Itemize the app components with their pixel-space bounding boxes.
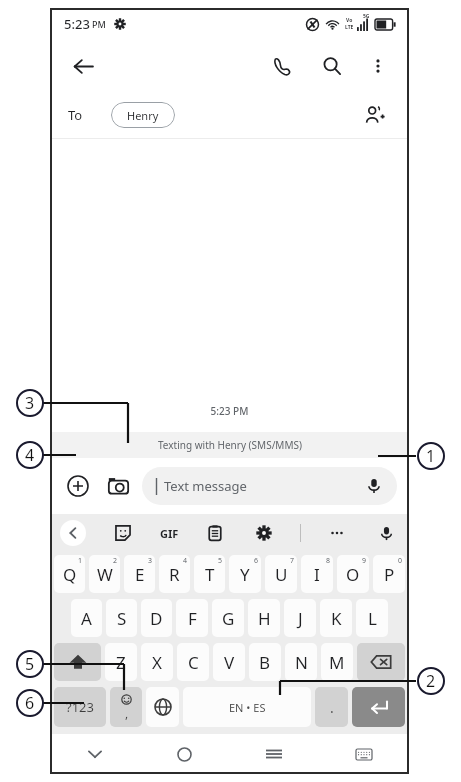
button[interactable]: GIF [160,520,179,546]
button[interactable]: Back [66,49,100,83]
button[interactable]: Clipboard [202,520,228,546]
button[interactable]: More [324,520,350,546]
button[interactable]: Home [139,734,229,774]
button[interactable]: Comma and emoji [110,687,142,727]
button[interactable]: Stickers [110,520,136,546]
button[interactable]: D [141,599,172,637]
staticText: 0 [398,556,403,566]
staticText: 3 [25,392,35,414]
staticText: 4 [183,556,188,566]
button[interactable]: Settings [251,520,277,546]
staticText: 2 [113,556,118,566]
staticText: 5 [218,556,223,566]
button[interactable]: A [71,599,102,637]
button[interactable]: Voice input [361,473,387,499]
button[interactable]: Search [315,49,349,83]
staticText: W [97,563,113,586]
staticText: O [346,563,360,586]
button[interactable]: L [356,599,388,637]
button[interactable]: Y [229,555,261,593]
button[interactable]: Recent apps [229,734,319,774]
staticText: L [368,607,377,630]
staticText: 8 [326,556,331,566]
staticText: PM [92,18,106,30]
button[interactable]: M [321,643,353,681]
button[interactable]: F [176,599,208,637]
staticText: U [275,563,288,586]
staticText: 6 [25,692,35,714]
button[interactable]: More options [363,51,393,81]
staticText: T [205,563,215,586]
staticText: Texting with Henry (SMS/MMS) [158,438,302,452]
staticText: X [152,651,162,674]
button[interactable]: Collapse toolbar [60,520,86,546]
staticText: 1 [78,556,83,566]
button[interactable]: Shift [54,643,101,681]
staticText: 2 [426,670,436,692]
staticText: LTE [345,24,354,31]
staticText: R [169,563,180,586]
staticText: H [258,607,271,630]
staticText: I [314,563,320,586]
button[interactable]: Add attachment [62,470,94,502]
staticText: Text message [164,477,247,495]
staticText: 4 [25,444,35,466]
staticText: B [259,651,271,674]
staticText: J [298,607,303,630]
button[interactable]: Camera [102,470,134,502]
button[interactable]: EN • ES [183,687,311,727]
staticText: M [329,651,345,674]
staticText: 9 [362,556,367,566]
button[interactable]: R [159,555,190,593]
staticText: Vo [346,17,353,24]
button[interactable]: N [285,643,317,681]
staticText: F [188,607,197,630]
button[interactable]: Z [105,643,137,681]
staticText: 7 [290,556,295,566]
button[interactable]: Add recipient [359,99,391,131]
button[interactable]: Text message [142,467,397,505]
button[interactable]: Q [54,555,85,593]
button[interactable]: Backspace [357,643,405,681]
staticText: S [117,607,127,630]
button[interactable]: W [89,555,120,593]
staticText: A [81,607,92,630]
staticText: P [384,563,395,586]
button[interactable]: K [320,599,352,637]
button[interactable]: T [194,555,225,593]
staticText: Q [63,563,77,586]
button[interactable]: V [213,643,245,681]
staticText: 5:23 [64,15,90,33]
button[interactable]: I [301,555,333,593]
button[interactable]: X [141,643,173,681]
button[interactable]: J [284,599,316,637]
staticText: GIF [160,526,179,541]
staticText: ?123 [66,698,94,716]
button[interactable]: B [249,643,281,681]
staticText: C [188,651,199,674]
button[interactable]: Change language [146,687,179,727]
staticText: 5G [363,13,370,20]
button[interactable]: Call [265,49,299,83]
button[interactable]: P [373,555,405,593]
button[interactable]: Switch keyboard [319,734,409,774]
button[interactable]: . [315,687,348,727]
button[interactable]: Enter [352,687,405,727]
button[interactable]: Hide keyboard [50,734,139,774]
button[interactable]: G [212,599,244,637]
button[interactable]: S [106,599,137,637]
button[interactable]: ?123 [54,687,106,727]
staticText: V [224,651,235,674]
button[interactable]: E [124,555,155,593]
button[interactable]: C [177,643,209,681]
staticText: 1 [426,445,436,467]
button[interactable]: Voice typing [373,520,399,546]
staticText: D [150,607,163,630]
staticText: G [222,607,235,630]
button[interactable]: Henry [111,102,175,128]
staticText: EN • ES [229,700,266,715]
button[interactable]: H [248,599,280,637]
staticText: 6 [254,556,259,566]
button[interactable]: O [337,555,369,593]
button[interactable]: U [265,555,297,593]
